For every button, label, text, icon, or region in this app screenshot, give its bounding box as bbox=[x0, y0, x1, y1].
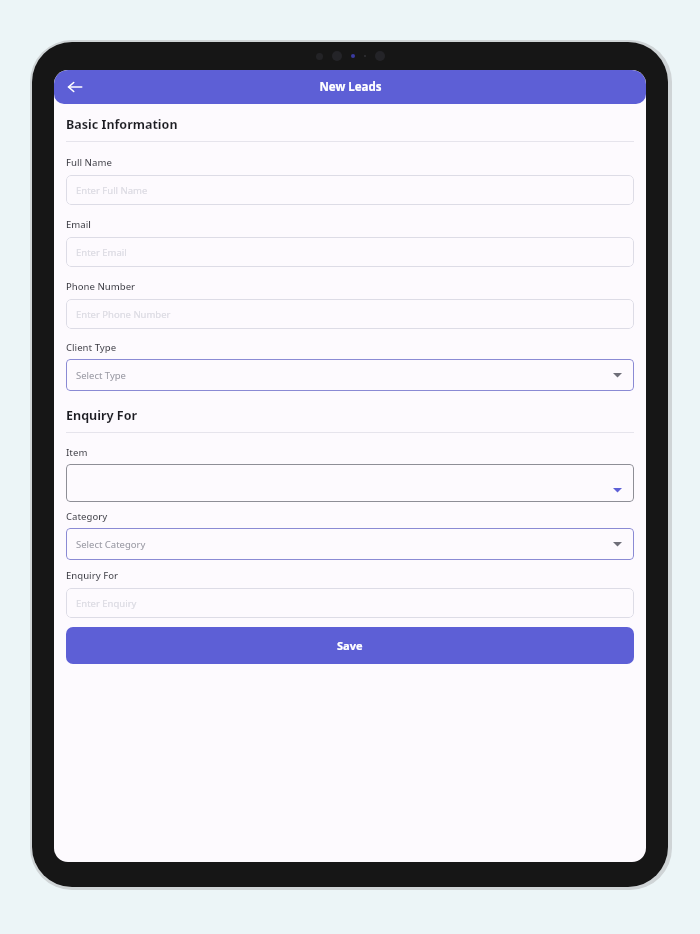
staticText: Save bbox=[337, 638, 363, 653]
button[interactable]: Enter Email bbox=[66, 237, 634, 267]
staticText: Phone Number bbox=[66, 280, 136, 293]
staticText: Enter Phone Number bbox=[76, 308, 171, 321]
button[interactable]: Select Type bbox=[66, 359, 634, 391]
button[interactable]: Enter Full Name bbox=[66, 175, 634, 205]
staticText: Full Name bbox=[66, 156, 112, 169]
staticText: Email bbox=[66, 218, 91, 231]
staticText: Enter Email bbox=[76, 246, 127, 259]
staticText: Item bbox=[66, 446, 88, 459]
staticText: Enquiry For bbox=[66, 569, 119, 582]
button[interactable]: Select Category bbox=[66, 528, 634, 560]
button[interactable]: Enter Enquiry bbox=[66, 588, 634, 618]
staticText: New Leads bbox=[319, 79, 382, 95]
button[interactable]: Back bbox=[58, 70, 92, 104]
staticText: Enter Enquiry bbox=[76, 597, 137, 610]
staticText: Client Type bbox=[66, 341, 117, 354]
staticText: Category bbox=[66, 510, 108, 523]
button[interactable]: Save bbox=[66, 627, 634, 664]
staticText: Enquiry For bbox=[66, 407, 138, 424]
staticText: Select Type bbox=[76, 369, 126, 382]
staticText: Enter Full Name bbox=[76, 184, 148, 197]
button[interactable]: Select item bbox=[66, 464, 634, 502]
button[interactable]: Enter Phone Number bbox=[66, 299, 634, 329]
staticText: Basic Information bbox=[66, 116, 178, 133]
staticText: Select Category bbox=[76, 538, 146, 551]
